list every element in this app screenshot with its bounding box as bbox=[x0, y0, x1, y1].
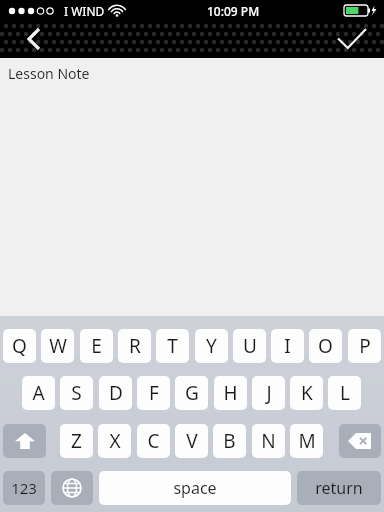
staticText: 123 bbox=[11, 478, 37, 498]
button[interactable]: E bbox=[80, 329, 113, 363]
staticText: C bbox=[147, 428, 160, 454]
staticText: G bbox=[185, 380, 199, 406]
button[interactable]: Numbers bbox=[3, 471, 45, 505]
button[interactable]: P bbox=[348, 329, 381, 363]
button[interactable]: Z bbox=[60, 424, 93, 458]
staticText: I bbox=[284, 333, 291, 359]
staticText: T bbox=[167, 333, 178, 359]
button[interactable]: Space bbox=[99, 471, 291, 505]
staticText: R bbox=[129, 333, 141, 359]
staticText: O bbox=[318, 333, 333, 359]
button[interactable]: O bbox=[309, 329, 342, 363]
staticText: Q bbox=[12, 333, 27, 359]
staticText: E bbox=[91, 333, 102, 359]
button[interactable]: S bbox=[60, 376, 93, 410]
staticText: S bbox=[71, 380, 82, 406]
button[interactable]: Backspace bbox=[339, 424, 381, 458]
button[interactable]: I bbox=[271, 329, 304, 363]
staticText: X bbox=[109, 428, 121, 454]
button[interactable]: N bbox=[252, 424, 285, 458]
button[interactable]: A bbox=[22, 376, 55, 410]
staticText: N bbox=[261, 428, 276, 454]
button[interactable]: U bbox=[233, 329, 266, 363]
button[interactable]: W bbox=[41, 329, 74, 363]
button[interactable]: B bbox=[213, 424, 246, 458]
button[interactable]: Switch keyboard bbox=[51, 471, 93, 505]
button[interactable]: K bbox=[290, 376, 323, 410]
staticText: B bbox=[223, 428, 236, 454]
staticText: U bbox=[243, 333, 257, 359]
button[interactable]: M bbox=[290, 424, 323, 458]
staticText: Lesson Note bbox=[8, 64, 90, 83]
button[interactable]: X bbox=[98, 424, 131, 458]
staticText: Y bbox=[206, 333, 217, 359]
staticText: W bbox=[49, 333, 67, 359]
button[interactable]: C bbox=[137, 424, 170, 458]
staticText: space bbox=[173, 477, 217, 499]
button[interactable]: V bbox=[175, 424, 208, 458]
button[interactable]: Back bbox=[14, 22, 54, 56]
button[interactable]: Shift bbox=[3, 424, 46, 458]
button[interactable]: Return bbox=[297, 471, 381, 505]
button[interactable]: L bbox=[328, 376, 361, 410]
button[interactable]: H bbox=[214, 376, 247, 410]
staticText: D bbox=[109, 380, 123, 406]
staticText: Z bbox=[71, 428, 82, 454]
staticText: return bbox=[315, 477, 363, 499]
button[interactable]: J bbox=[252, 376, 285, 410]
staticText: A bbox=[32, 380, 45, 406]
staticText: L bbox=[340, 380, 350, 406]
button[interactable]: R bbox=[118, 329, 151, 363]
staticText: 10:09 PM bbox=[207, 3, 260, 19]
button[interactable]: G bbox=[175, 376, 208, 410]
button[interactable]: Q bbox=[3, 329, 36, 363]
button[interactable]: T bbox=[156, 329, 189, 363]
button[interactable]: Done bbox=[330, 22, 374, 56]
staticText: P bbox=[359, 333, 371, 359]
staticText: H bbox=[223, 380, 238, 406]
staticText: J bbox=[266, 380, 272, 406]
staticText: I WIND bbox=[64, 3, 105, 19]
staticText: V bbox=[186, 428, 198, 454]
button[interactable]: D bbox=[99, 376, 132, 410]
staticText: K bbox=[301, 380, 313, 406]
button[interactable]: Y bbox=[195, 329, 228, 363]
staticText: F bbox=[149, 380, 159, 406]
staticText: M bbox=[298, 428, 316, 454]
button[interactable]: F bbox=[137, 376, 170, 410]
